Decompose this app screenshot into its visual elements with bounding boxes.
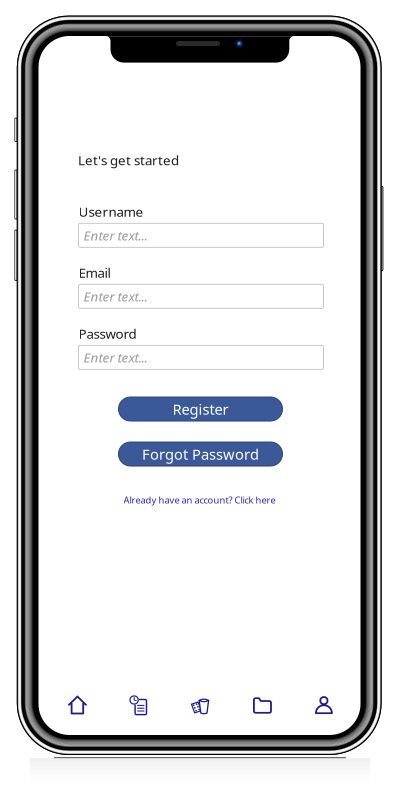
staticText: Email bbox=[78, 264, 110, 281]
staticText: Password bbox=[78, 325, 136, 342]
button[interactable]: Home bbox=[47, 684, 108, 726]
button[interactable]: Medication bbox=[170, 684, 231, 726]
staticText: Already have an account? Click here bbox=[123, 494, 275, 506]
button[interactable]: Profile bbox=[293, 684, 355, 726]
staticText: Forgot Password bbox=[142, 444, 259, 464]
button[interactable]: Files bbox=[231, 684, 293, 726]
staticText: Enter text... bbox=[83, 287, 147, 305]
staticText: Let's get started bbox=[78, 151, 179, 169]
button[interactable]: Register bbox=[118, 397, 282, 421]
button[interactable]: Already have an account? Click here bbox=[74, 492, 324, 508]
button[interactable]: History bbox=[108, 684, 170, 726]
staticText: Enter text... bbox=[83, 348, 147, 366]
staticText: Register bbox=[172, 399, 228, 419]
staticText: Username bbox=[78, 203, 143, 220]
staticText: Enter text... bbox=[83, 226, 147, 244]
button[interactable]: Forgot Password bbox=[118, 442, 282, 466]
